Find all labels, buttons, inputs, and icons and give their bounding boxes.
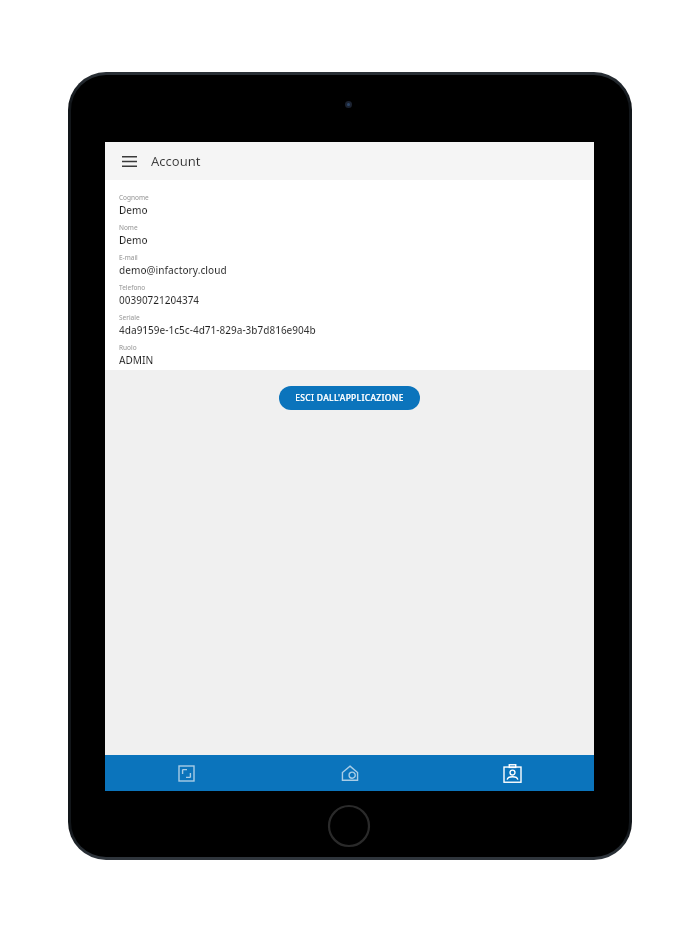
staticText: demo@infactory.cloud xyxy=(119,263,227,277)
staticText: Account xyxy=(151,152,201,170)
staticText: Nome xyxy=(119,223,138,232)
staticText: Demo xyxy=(119,203,148,217)
staticText: ESCI DALL'APPLICAZIONE xyxy=(295,392,404,404)
button[interactable]: Scan xyxy=(105,755,268,791)
staticText: Telefono xyxy=(119,283,146,292)
staticText: Cognome xyxy=(119,193,149,202)
button[interactable]: ESCI DALL'APPLICAZIONE xyxy=(279,386,420,410)
staticText: ADMIN xyxy=(119,353,154,364)
button[interactable]: Home xyxy=(268,755,431,791)
staticText: Demo xyxy=(119,233,148,247)
button[interactable]: Open navigation menu xyxy=(113,145,145,177)
button[interactable]: Account xyxy=(431,755,594,791)
staticText: 00390721204374 xyxy=(119,293,200,307)
staticText: Seriale xyxy=(119,313,140,322)
staticText: 4da9159e-1c5c-4d71-829a-3b7d816e904b xyxy=(119,323,316,337)
staticText: Ruolo xyxy=(119,343,137,352)
staticText: E-mail xyxy=(119,253,138,262)
